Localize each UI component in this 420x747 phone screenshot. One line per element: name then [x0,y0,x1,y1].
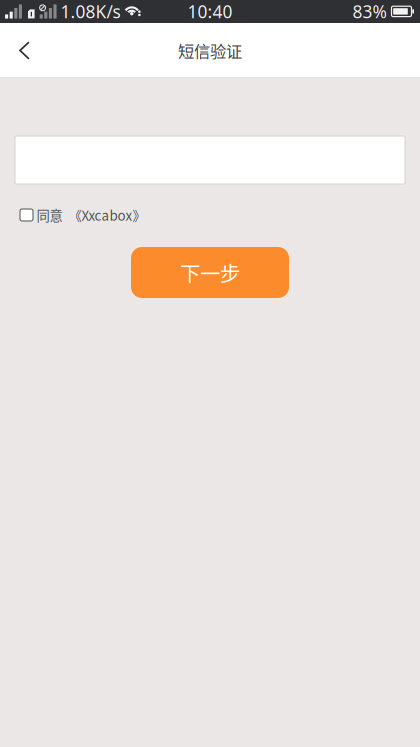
staticText: 83% [352,0,386,23]
staticText: 10:40 [187,0,232,23]
staticText: 《Xxcabox》 [68,205,145,225]
button[interactable]: Back [0,23,50,78]
button[interactable]: 同意 [20,207,410,223]
staticText: 1.08K/s [61,0,121,23]
staticText: 同意 [36,205,62,225]
button[interactable]: 下一步 [131,247,289,298]
staticText: 下一步 [180,258,240,287]
staticText: 短信验证 [178,39,242,62]
